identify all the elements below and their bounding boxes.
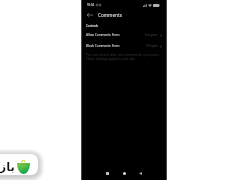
button[interactable]: Bazaar: [0, 154, 38, 175]
button[interactable]: Home: [120, 169, 128, 177]
staticText: 10:54: [87, 3, 95, 7]
staticText: Everyone: [145, 33, 158, 37]
button[interactable]: Block Comments From: [81, 42, 167, 50]
button[interactable]: Back: [84, 10, 95, 19]
button[interactable]: Recents: [136, 169, 144, 177]
staticText: Allow Comments From: [86, 33, 120, 37]
staticText: 0 People: [146, 44, 158, 48]
button[interactable]: Allow Comments From: [81, 31, 167, 39]
staticText: You can control who can comment on your …: [86, 53, 161, 61]
staticText: Comments: [98, 12, 122, 18]
button[interactable]: Back: [103, 169, 111, 177]
staticText: Block Comments From: [86, 44, 120, 48]
staticText: Controls: [86, 24, 99, 28]
staticText: بازار: [0, 160, 15, 173]
